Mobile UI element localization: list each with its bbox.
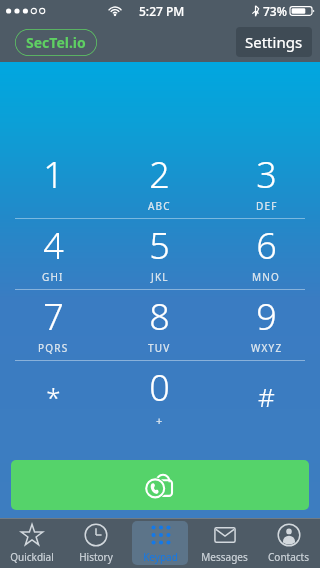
staticText: + bbox=[156, 413, 164, 428]
staticText: 6 bbox=[256, 221, 277, 270]
button[interactable]: Messages bbox=[196, 521, 252, 565]
staticText: 2 bbox=[149, 150, 170, 199]
button[interactable]: 8 bbox=[106, 290, 213, 360]
button[interactable]: Settings bbox=[236, 27, 312, 57]
button[interactable]: 0 bbox=[106, 361, 213, 435]
button[interactable]: SecTel.io bbox=[14, 28, 98, 57]
button[interactable]: Quickdial bbox=[4, 521, 60, 565]
staticText: 5 bbox=[149, 221, 170, 270]
button[interactable]: Keypad bbox=[132, 521, 188, 565]
staticText: History bbox=[79, 550, 113, 564]
staticText: WXYZ bbox=[251, 341, 283, 355]
staticText: SecTel.io bbox=[26, 33, 86, 52]
button[interactable]: 2 bbox=[106, 148, 213, 218]
staticText: JKL bbox=[151, 270, 169, 284]
button[interactable]: 7 bbox=[0, 290, 106, 360]
staticText: GHI bbox=[42, 270, 64, 284]
button[interactable]: History bbox=[68, 521, 124, 565]
staticText: Messages bbox=[201, 550, 248, 564]
staticText: 1 bbox=[43, 150, 64, 199]
button[interactable]: Secure call bbox=[11, 460, 309, 510]
staticText: PQRS bbox=[38, 341, 69, 355]
button[interactable]: * bbox=[0, 361, 106, 435]
staticText: DEF bbox=[256, 199, 278, 213]
staticText: 0 bbox=[149, 363, 170, 412]
staticText: Quickdial bbox=[10, 550, 54, 564]
button[interactable]: 1 bbox=[0, 148, 106, 218]
staticText: 5:27 PM bbox=[139, 3, 185, 19]
button[interactable]: # bbox=[213, 361, 320, 435]
staticText: MNO bbox=[252, 270, 281, 284]
staticText: 9 bbox=[256, 292, 277, 341]
button[interactable]: 6 bbox=[213, 219, 320, 289]
staticText: TUV bbox=[148, 341, 171, 355]
staticText: 4 bbox=[43, 221, 64, 270]
staticText: 73% bbox=[263, 3, 287, 19]
staticText: ABC bbox=[148, 199, 171, 213]
staticText: Keypad bbox=[143, 550, 178, 564]
staticText: 8 bbox=[149, 292, 170, 341]
button[interactable]: Contacts bbox=[260, 521, 316, 565]
button[interactable]: 4 bbox=[0, 219, 106, 289]
staticText: 3 bbox=[256, 150, 277, 199]
button[interactable]: 5 bbox=[106, 219, 213, 289]
button[interactable]: 3 bbox=[213, 148, 320, 218]
staticText: Settings bbox=[245, 32, 303, 52]
staticText: Contacts bbox=[268, 550, 309, 564]
staticText: 7 bbox=[43, 292, 64, 341]
button[interactable]: 9 bbox=[213, 290, 320, 360]
staticText: # bbox=[258, 379, 275, 414]
staticText: * bbox=[46, 379, 61, 414]
